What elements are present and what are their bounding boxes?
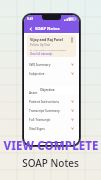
staticText: SOAP Notes <box>22 156 79 170</box>
staticText: SOAP Notes <box>35 26 60 32</box>
staticText: Vijay and Raj Patel <box>30 37 63 42</box>
staticText: SWI Summary <box>29 63 51 67</box>
button[interactable]: Vital Signs <box>27 124 76 133</box>
staticText: View full transcript <box>30 52 53 55</box>
button[interactable]: Transcript Summary <box>27 106 76 115</box>
staticText: Full Transcript <box>29 118 51 122</box>
button[interactable]: Assessment and Plan <box>27 88 76 97</box>
button[interactable]: Vijay and Raj Patel <box>27 35 76 57</box>
staticText: Patient Instructions <box>29 100 60 104</box>
button[interactable]: Subjective <box>27 69 76 78</box>
staticText: Assessment and Plan <box>29 91 62 95</box>
button[interactable]: Back <box>27 25 34 32</box>
staticText: Follow Up Visit <box>30 43 51 47</box>
button[interactable]: Objective <box>37 86 79 94</box>
staticText: 9:41 <box>27 17 34 21</box>
button[interactable]: Patient Instructions <box>27 97 76 106</box>
staticText: VIEW COMPLETE <box>3 138 99 154</box>
staticText: Subjective <box>29 72 45 76</box>
staticText: Vital Signs <box>29 127 45 131</box>
staticText: Objective <box>40 88 55 92</box>
button[interactable]: SWI Summary <box>27 60 76 69</box>
staticText: Pt. has history of heart disease symptom… <box>30 48 73 51</box>
button[interactable]: Full Transcript <box>27 115 76 124</box>
staticText: Transcript Summary <box>29 109 60 113</box>
